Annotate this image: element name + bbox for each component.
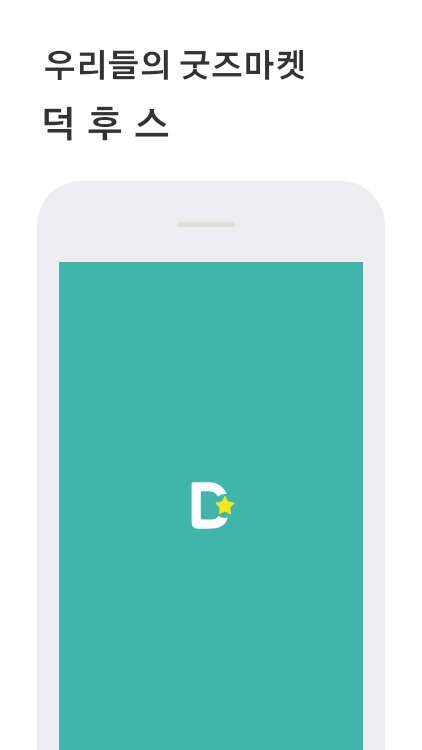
- staticText: 덕 후 스: [40, 108, 172, 144]
- staticText: 우리들의 굿즈마켓: [44, 51, 307, 83]
- button[interactable]: Duckhouse app splash screen: [59, 262, 363, 750]
